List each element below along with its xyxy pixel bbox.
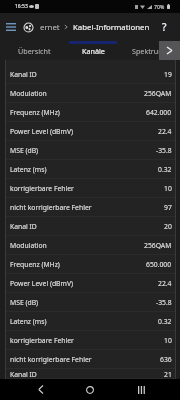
staticText: 20: [164, 222, 172, 231]
staticText: Kanal ID: [10, 222, 37, 231]
button[interactable]: Kabel-Informationen: [73, 22, 150, 33]
staticText: 636: [160, 355, 172, 364]
button[interactable]: Latenz (ms): [6, 312, 175, 331]
staticText: Latenz (ms): [10, 317, 47, 326]
staticText: 22.4: [158, 279, 172, 288]
button[interactable]: Kanal ID: [6, 369, 175, 379]
button[interactable]: Help: [157, 20, 171, 34]
staticText: Modulation: [10, 241, 47, 250]
button[interactable]: Latenz (ms): [6, 160, 175, 179]
staticText: nicht korrigierbare Fehler: [10, 355, 92, 364]
button[interactable]: Recent apps: [130, 379, 152, 400]
button[interactable]: ernet: [40, 22, 60, 33]
button[interactable]: Power Level (dBmV): [6, 274, 175, 293]
button[interactable]: Spektrum: [117, 41, 179, 60]
staticText: Übersicht: [18, 46, 51, 56]
staticText: nicht korrigierbare Fehler: [10, 203, 92, 212]
staticText: Kanal ID: [10, 370, 37, 379]
staticText: 256QAM: [144, 89, 172, 98]
staticText: -35.8: [156, 298, 172, 307]
staticText: Frequenz (MHz): [10, 260, 60, 269]
staticText: 10: [164, 336, 172, 345]
button[interactable]: Modulation: [6, 84, 175, 103]
staticText: MSE (dB): [10, 298, 39, 307]
staticText: MSE (dB): [10, 146, 39, 155]
button[interactable]: nicht korrigierbare Fehler: [6, 198, 175, 217]
button[interactable]: Frequenz (MHz): [6, 103, 175, 122]
staticText: 16:53: [15, 3, 28, 10]
button[interactable]: Back: [29, 379, 51, 400]
staticText: Frequenz (MHz): [10, 108, 60, 117]
staticText: Latenz (ms): [10, 165, 47, 174]
button[interactable]: Home: [79, 379, 101, 400]
staticText: Power Level (dBmV): [10, 279, 74, 288]
button[interactable]: korrigierbare Fehler: [6, 179, 175, 198]
staticText: Kanal ID: [10, 70, 37, 79]
button[interactable]: Kanäle: [69, 41, 117, 60]
staticText: 70%: [154, 3, 165, 10]
staticText: 10: [164, 184, 172, 193]
button[interactable]: Frequenz (MHz): [6, 255, 175, 274]
staticText: 21: [164, 370, 172, 379]
staticText: 650.000: [146, 260, 172, 269]
staticText: -35.8: [156, 146, 172, 155]
button[interactable]: Open navigation menu: [4, 19, 18, 35]
button[interactable]: Scroll tabs right: [159, 41, 180, 60]
staticText: 22.4: [158, 127, 172, 136]
staticText: 0.32: [158, 317, 172, 326]
staticText: 256QAM: [144, 241, 172, 250]
staticText: Spektrum: [132, 46, 165, 56]
button[interactable]: Internet: [21, 19, 35, 35]
button[interactable]: Kanal ID: [6, 217, 175, 236]
staticText: 642.000: [146, 108, 172, 117]
button[interactable]: Modulation: [6, 236, 175, 255]
staticText: ?: [162, 20, 167, 34]
staticText: Kanäle: [82, 46, 105, 56]
staticText: 0.32: [158, 165, 172, 174]
button[interactable]: MSE (dB): [6, 293, 175, 312]
button[interactable]: korrigierbare Fehler: [6, 331, 175, 350]
staticText: 97: [164, 203, 172, 212]
staticText: 19: [164, 70, 172, 79]
button[interactable]: MSE (dB): [6, 141, 175, 160]
staticText: Power Level (dBmV): [10, 127, 74, 136]
staticText: Modulation: [10, 89, 47, 98]
staticText: korrigierbare Fehler: [10, 184, 74, 193]
button[interactable]: nicht korrigierbare Fehler: [6, 350, 175, 369]
button[interactable]: Kanal ID: [6, 65, 175, 84]
button[interactable]: Übersicht: [0, 41, 69, 60]
button[interactable]: Power Level (dBmV): [6, 122, 175, 141]
staticText: korrigierbare Fehler: [10, 336, 74, 345]
